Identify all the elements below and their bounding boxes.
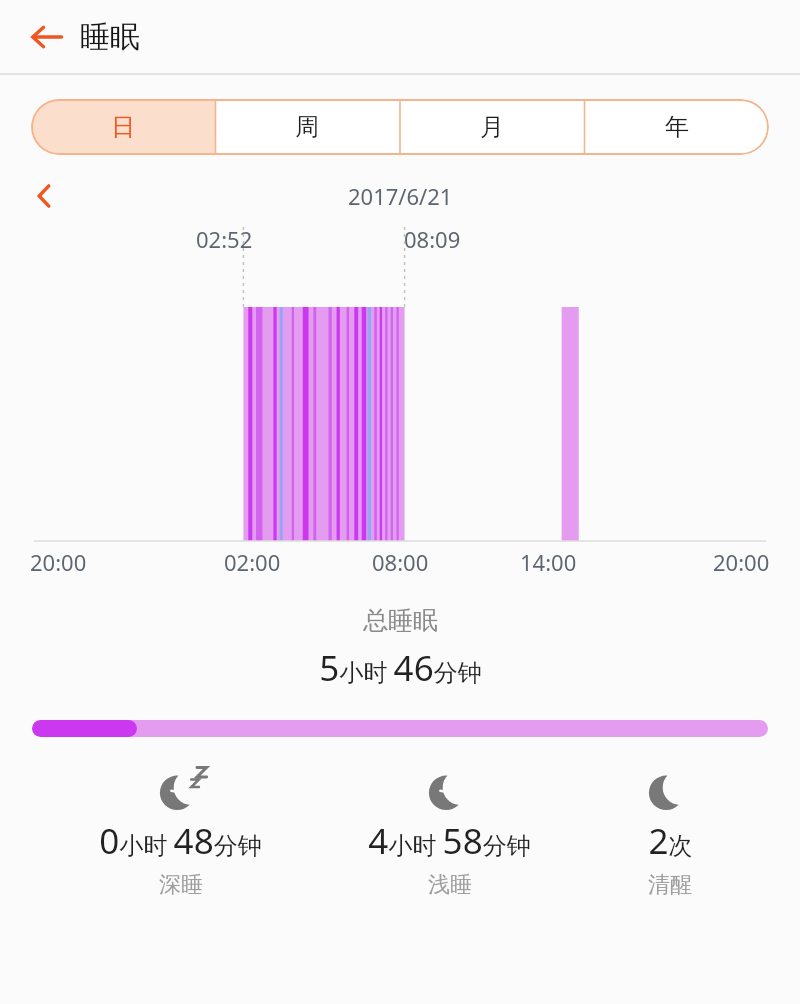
button[interactable]: 月 <box>399 99 584 155</box>
button[interactable]: Previous day <box>22 174 66 218</box>
staticText: 年 <box>665 112 689 142</box>
staticText: 周 <box>295 112 319 142</box>
button[interactable]: 日 <box>31 99 215 155</box>
staticText: 02:52 <box>196 224 253 254</box>
staticText: 08:09 <box>404 224 461 254</box>
staticText: 2次 <box>648 817 693 865</box>
staticText: 睡眠 <box>80 18 140 56</box>
staticText: 08:00 <box>372 547 429 577</box>
staticText: 深睡 <box>159 871 203 899</box>
staticText: 2017/6/21 <box>348 181 453 211</box>
button[interactable]: 2次 <box>630 765 710 899</box>
staticText: 5小时 46分钟 <box>319 644 482 692</box>
button[interactable]: 年 <box>584 99 769 155</box>
staticText: 20:00 <box>30 547 87 577</box>
staticText: 4小时 58分钟 <box>368 817 531 865</box>
staticText: 02:00 <box>224 547 281 577</box>
staticText: 0小时 48分钟 <box>99 817 262 865</box>
button[interactable]: Back <box>18 10 72 64</box>
button[interactable]: 4小时 58分钟 <box>360 765 539 899</box>
staticText: 14:00 <box>520 547 577 577</box>
staticText: 清醒 <box>648 871 692 899</box>
button[interactable]: 周 <box>215 99 399 155</box>
staticText: 浅睡 <box>428 871 472 899</box>
staticText: 月 <box>480 112 504 142</box>
staticText: 日 <box>111 112 135 142</box>
staticText: 总睡眠 <box>363 605 438 636</box>
button[interactable]: 0小时 48分钟 <box>91 765 270 899</box>
staticText: 20:00 <box>713 547 770 577</box>
